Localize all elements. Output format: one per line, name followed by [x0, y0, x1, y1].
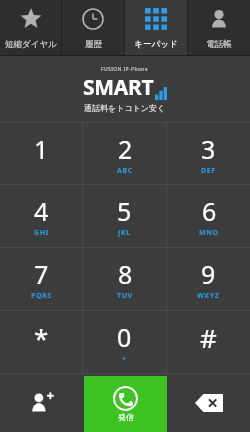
staticText: JKL: [118, 228, 131, 238]
staticText: 8: [118, 257, 133, 291]
staticText: ABC: [117, 166, 133, 176]
staticText: 履歴: [85, 39, 102, 50]
staticText: キーパッド: [134, 39, 178, 50]
staticText: 6: [202, 194, 217, 228]
staticText: PQRS: [31, 291, 52, 301]
button[interactable]: 2: [83, 123, 166, 184]
staticText: FUSION IP-Phone: [101, 66, 149, 73]
button[interactable]: 1: [0, 123, 82, 184]
staticText: 1: [34, 132, 49, 166]
staticText: DEF: [201, 166, 216, 176]
staticText: 7: [34, 257, 49, 291]
button[interactable]: Add contact: [0, 374, 84, 432]
staticText: *: [34, 320, 49, 355]
button[interactable]: 短縮ダイヤル: [0, 0, 61, 56]
staticText: 3: [201, 132, 216, 166]
staticText: 0: [117, 320, 132, 354]
staticText: MNO: [199, 228, 219, 238]
button[interactable]: Backspace: [167, 374, 250, 432]
staticText: GHI: [34, 228, 49, 238]
staticText: 5: [117, 194, 132, 228]
button[interactable]: 8: [83, 248, 166, 310]
staticText: 通話料をトコトン安く: [84, 103, 166, 113]
button[interactable]: 0: [83, 311, 166, 373]
staticText: +: [122, 354, 127, 364]
button[interactable]: 電話帳: [188, 0, 250, 56]
button[interactable]: 4: [0, 185, 82, 247]
staticText: 電話帳: [206, 39, 232, 50]
staticText: 2: [118, 132, 133, 166]
staticText: SMART: [83, 73, 154, 102]
staticText: #: [200, 320, 217, 355]
staticText: 4: [34, 194, 49, 228]
button[interactable]: 9: [167, 248, 250, 310]
staticText: 短縮ダイヤル: [5, 39, 57, 50]
button[interactable]: 5: [83, 185, 166, 247]
button[interactable]: 履歴: [62, 0, 124, 56]
button[interactable]: *: [0, 311, 82, 373]
button[interactable]: 7: [0, 248, 82, 310]
button[interactable]: #: [167, 311, 250, 373]
staticText: WXYZ: [197, 291, 220, 301]
staticText: TUV: [117, 291, 133, 301]
button[interactable]: 3: [167, 123, 250, 184]
staticText: 9: [201, 257, 216, 291]
button[interactable]: 発信: [84, 376, 167, 432]
button[interactable]: 6: [167, 185, 250, 247]
button[interactable]: キーパッド: [125, 0, 187, 56]
staticText: 発信: [118, 412, 134, 422]
